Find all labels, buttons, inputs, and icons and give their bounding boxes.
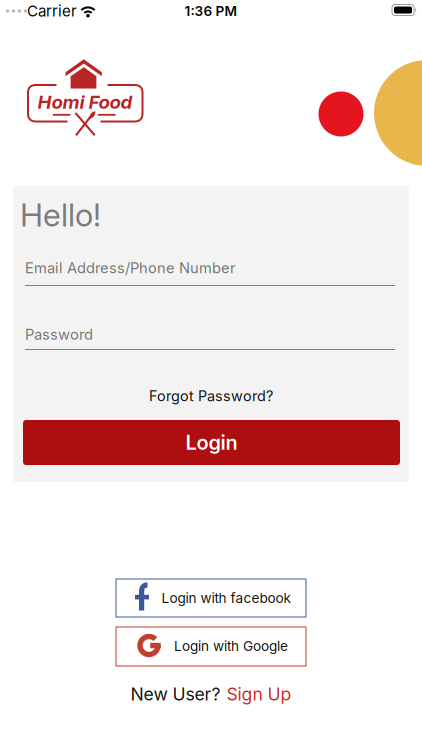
staticText: Login: [185, 430, 237, 455]
button[interactable]: Sign Up: [226, 683, 291, 705]
staticText: Login with Google: [174, 638, 288, 654]
staticText: Email Address/Phone Number: [25, 259, 236, 277]
staticText: Hello!: [20, 196, 101, 234]
staticText: Carrier: [27, 2, 77, 20]
button[interactable]: Login with Google: [116, 627, 306, 666]
button[interactable]: Login with facebook: [116, 579, 306, 617]
staticText: Sign Up: [226, 683, 291, 705]
button[interactable]: Login: [23, 420, 400, 465]
staticText: Forgot Password?: [149, 387, 273, 405]
staticText: 1:36 PM: [184, 3, 237, 19]
staticText: New User?: [130, 683, 220, 705]
button[interactable]: Forgot Password?: [141, 383, 281, 409]
staticText: Password: [25, 326, 93, 343]
staticText: Login with facebook: [161, 590, 290, 606]
staticText: Homi Food: [37, 91, 132, 113]
